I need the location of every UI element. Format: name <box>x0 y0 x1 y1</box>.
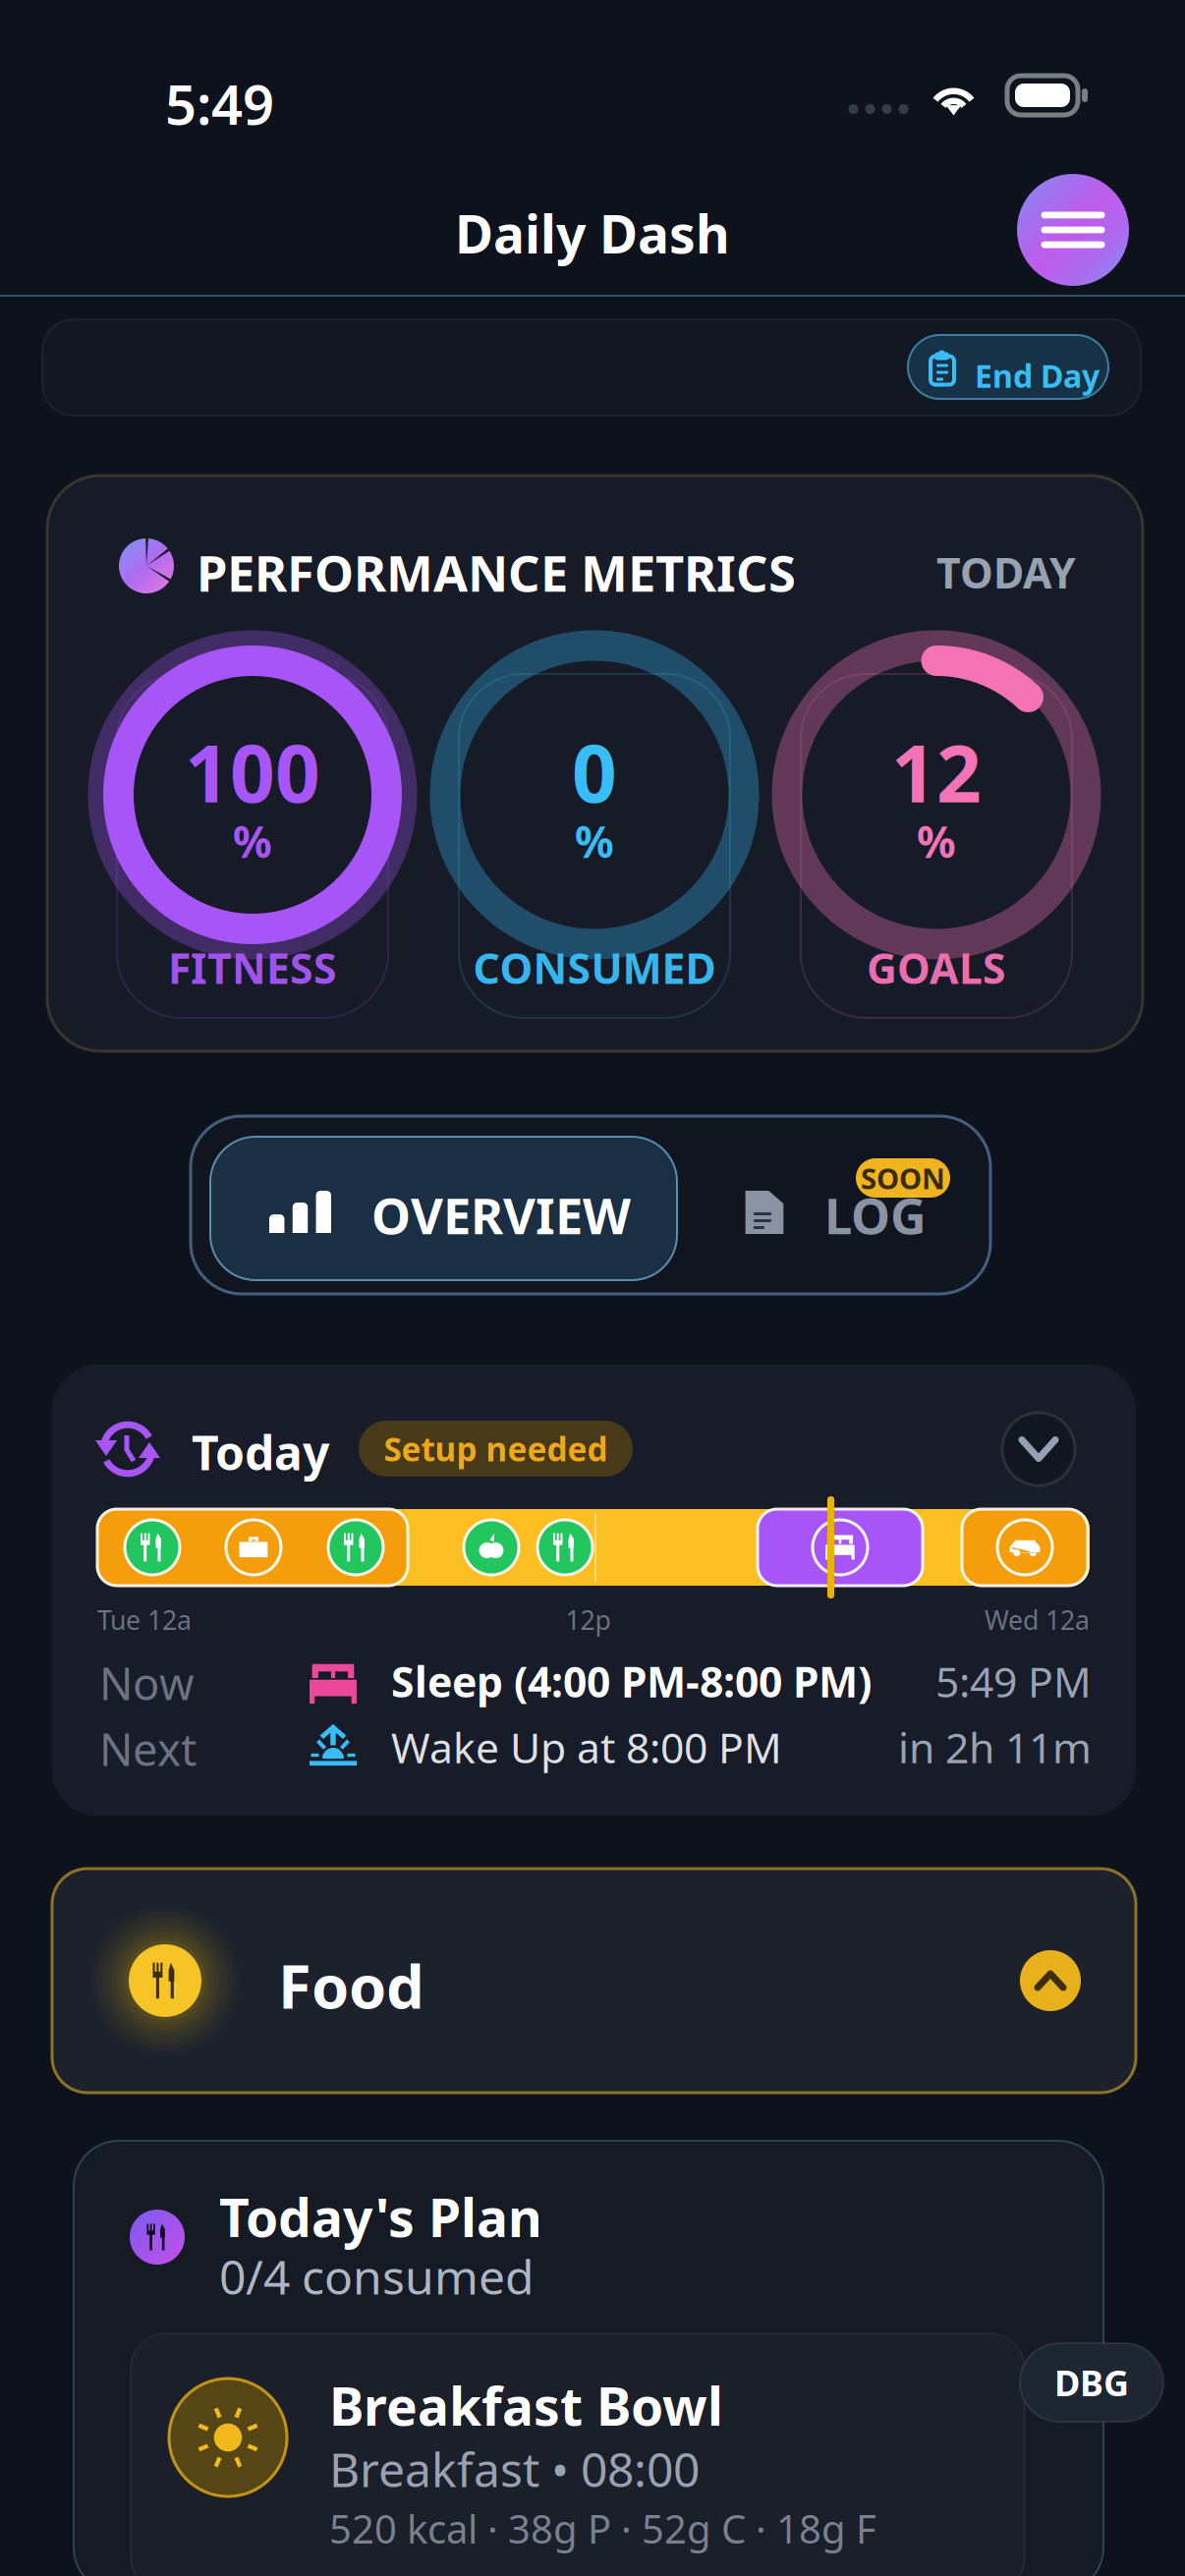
staticText: PERFORMANCE METRICS <box>197 539 796 605</box>
staticText: End Day <box>975 355 1100 396</box>
button[interactable]: OVERVIEW <box>210 1137 677 1280</box>
staticText: Sleep (4:00 PM-8:00 PM) <box>391 1653 872 1709</box>
staticText: Wed 12a <box>985 1602 1090 1637</box>
staticText: 520 kcal · 38g P · 52g C · 18g F <box>329 2502 876 2554</box>
staticText: 5:49 <box>165 67 274 140</box>
staticText: GOALS <box>867 940 1006 996</box>
button[interactable]: LOG <box>692 1137 987 1280</box>
staticText: Tue 12a <box>97 1602 192 1637</box>
staticText: CONSUMED <box>473 940 716 996</box>
staticText: % <box>917 812 956 870</box>
button[interactable]: End Day <box>908 335 1108 399</box>
staticText: Breakfast • 08:00 <box>329 2437 700 2500</box>
staticText: Next <box>99 1719 197 1778</box>
staticText: Setup needed <box>384 1427 608 1470</box>
staticText: Today <box>192 1421 329 1483</box>
staticText: Food <box>278 1945 424 2025</box>
button[interactable]: Food <box>52 1869 1136 2093</box>
button[interactable]: Collapse Today <box>1002 1413 1075 1485</box>
staticText: 100 <box>185 720 320 824</box>
staticText: % <box>575 812 614 870</box>
staticText: TODAY <box>936 544 1076 600</box>
staticText: DBG <box>1054 2359 1129 2406</box>
staticText: Today's Plan <box>219 2182 542 2252</box>
staticText: Breakfast Bowl <box>329 2371 723 2440</box>
staticText: 12p <box>565 1602 611 1637</box>
staticText: 5:49 PM <box>935 1653 1092 1709</box>
staticText: FITNESS <box>168 940 337 996</box>
staticText: LOG <box>824 1182 927 1248</box>
button[interactable]: DBG <box>1020 2343 1163 2422</box>
button[interactable]: Menu <box>1017 174 1129 286</box>
staticText: in 2h 11m <box>898 1719 1092 1775</box>
staticText: 0/4 consumed <box>219 2245 535 2307</box>
staticText: SOON <box>861 1159 945 1197</box>
staticText: Wake Up at 8:00 PM <box>391 1719 782 1775</box>
staticText: OVERVIEW <box>371 1182 631 1248</box>
staticText: 12 <box>891 720 982 824</box>
staticText: Daily Dash <box>455 198 730 268</box>
staticText: 0 <box>572 720 617 824</box>
staticText: % <box>233 812 272 870</box>
staticText: Now <box>99 1653 195 1713</box>
